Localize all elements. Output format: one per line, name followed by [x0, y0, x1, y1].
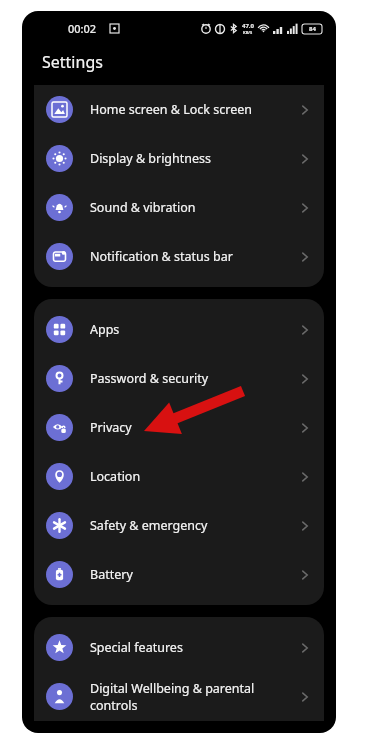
button[interactable]: Sound & vibration [34, 183, 324, 232]
button[interactable]: Password & security [34, 354, 324, 403]
staticText: Settings [42, 51, 103, 73]
button[interactable]: Safety & emergency [34, 501, 324, 550]
staticText: Safety & emergency [90, 517, 292, 534]
staticText: 84 [309, 25, 316, 33]
staticText: Sound & vibration [90, 199, 292, 216]
staticText: Special features [90, 639, 292, 656]
button[interactable]: Display & brightness [34, 134, 324, 183]
button[interactable]: Battery [34, 550, 324, 599]
staticText: Digital Wellbeing & parental controls [90, 680, 292, 713]
button[interactable]: Digital Wellbeing & parental controls [34, 672, 324, 721]
staticText: 00:02 [68, 21, 97, 36]
staticText: Privacy [90, 419, 292, 436]
staticText: Notification & status bar [90, 248, 292, 265]
button[interactable]: Privacy [34, 403, 324, 452]
staticText: Location [90, 468, 292, 485]
button[interactable]: Notification & status bar [34, 232, 324, 281]
button[interactable]: Special features [34, 623, 324, 672]
staticText: Password & security [90, 370, 292, 387]
staticText: Apps [90, 321, 292, 338]
staticText: Display & brightness [90, 150, 292, 167]
staticText: Battery [90, 566, 292, 583]
staticText: 47.0 [242, 22, 254, 30]
button[interactable]: Apps [34, 305, 324, 354]
button[interactable]: Location [34, 452, 324, 501]
button[interactable]: Home screen & Lock screen [34, 85, 324, 134]
staticText: KB/S [243, 30, 253, 35]
staticText: Home screen & Lock screen [90, 101, 292, 118]
